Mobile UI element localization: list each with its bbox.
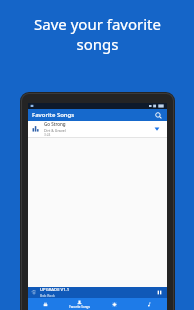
button[interactable]: Favorite Songs	[62, 298, 97, 310]
button[interactable]: Settings	[97, 298, 132, 310]
button[interactable]: Search	[152, 109, 164, 121]
staticText: Favorite Songs	[32, 111, 75, 119]
button[interactable]: Download	[150, 122, 164, 136]
staticText: Dirt & Gravel	[44, 128, 66, 133]
staticText: Favorite Songs	[69, 305, 90, 309]
button[interactable]: Library	[28, 298, 62, 310]
button[interactable]: Pause	[154, 287, 165, 298]
button[interactable]: Music note	[132, 298, 167, 310]
staticText: UPGRADE V1.1	[40, 287, 70, 293]
staticText: Save your favorite songs	[34, 14, 161, 54]
button[interactable]: UPGRADE V1.1	[28, 287, 167, 298]
staticText: Go Strong	[44, 121, 66, 127]
staticText: Bob Rock	[40, 293, 55, 298]
button[interactable]: Go Strong	[28, 121, 167, 137]
staticText: 3:24	[44, 133, 51, 137]
